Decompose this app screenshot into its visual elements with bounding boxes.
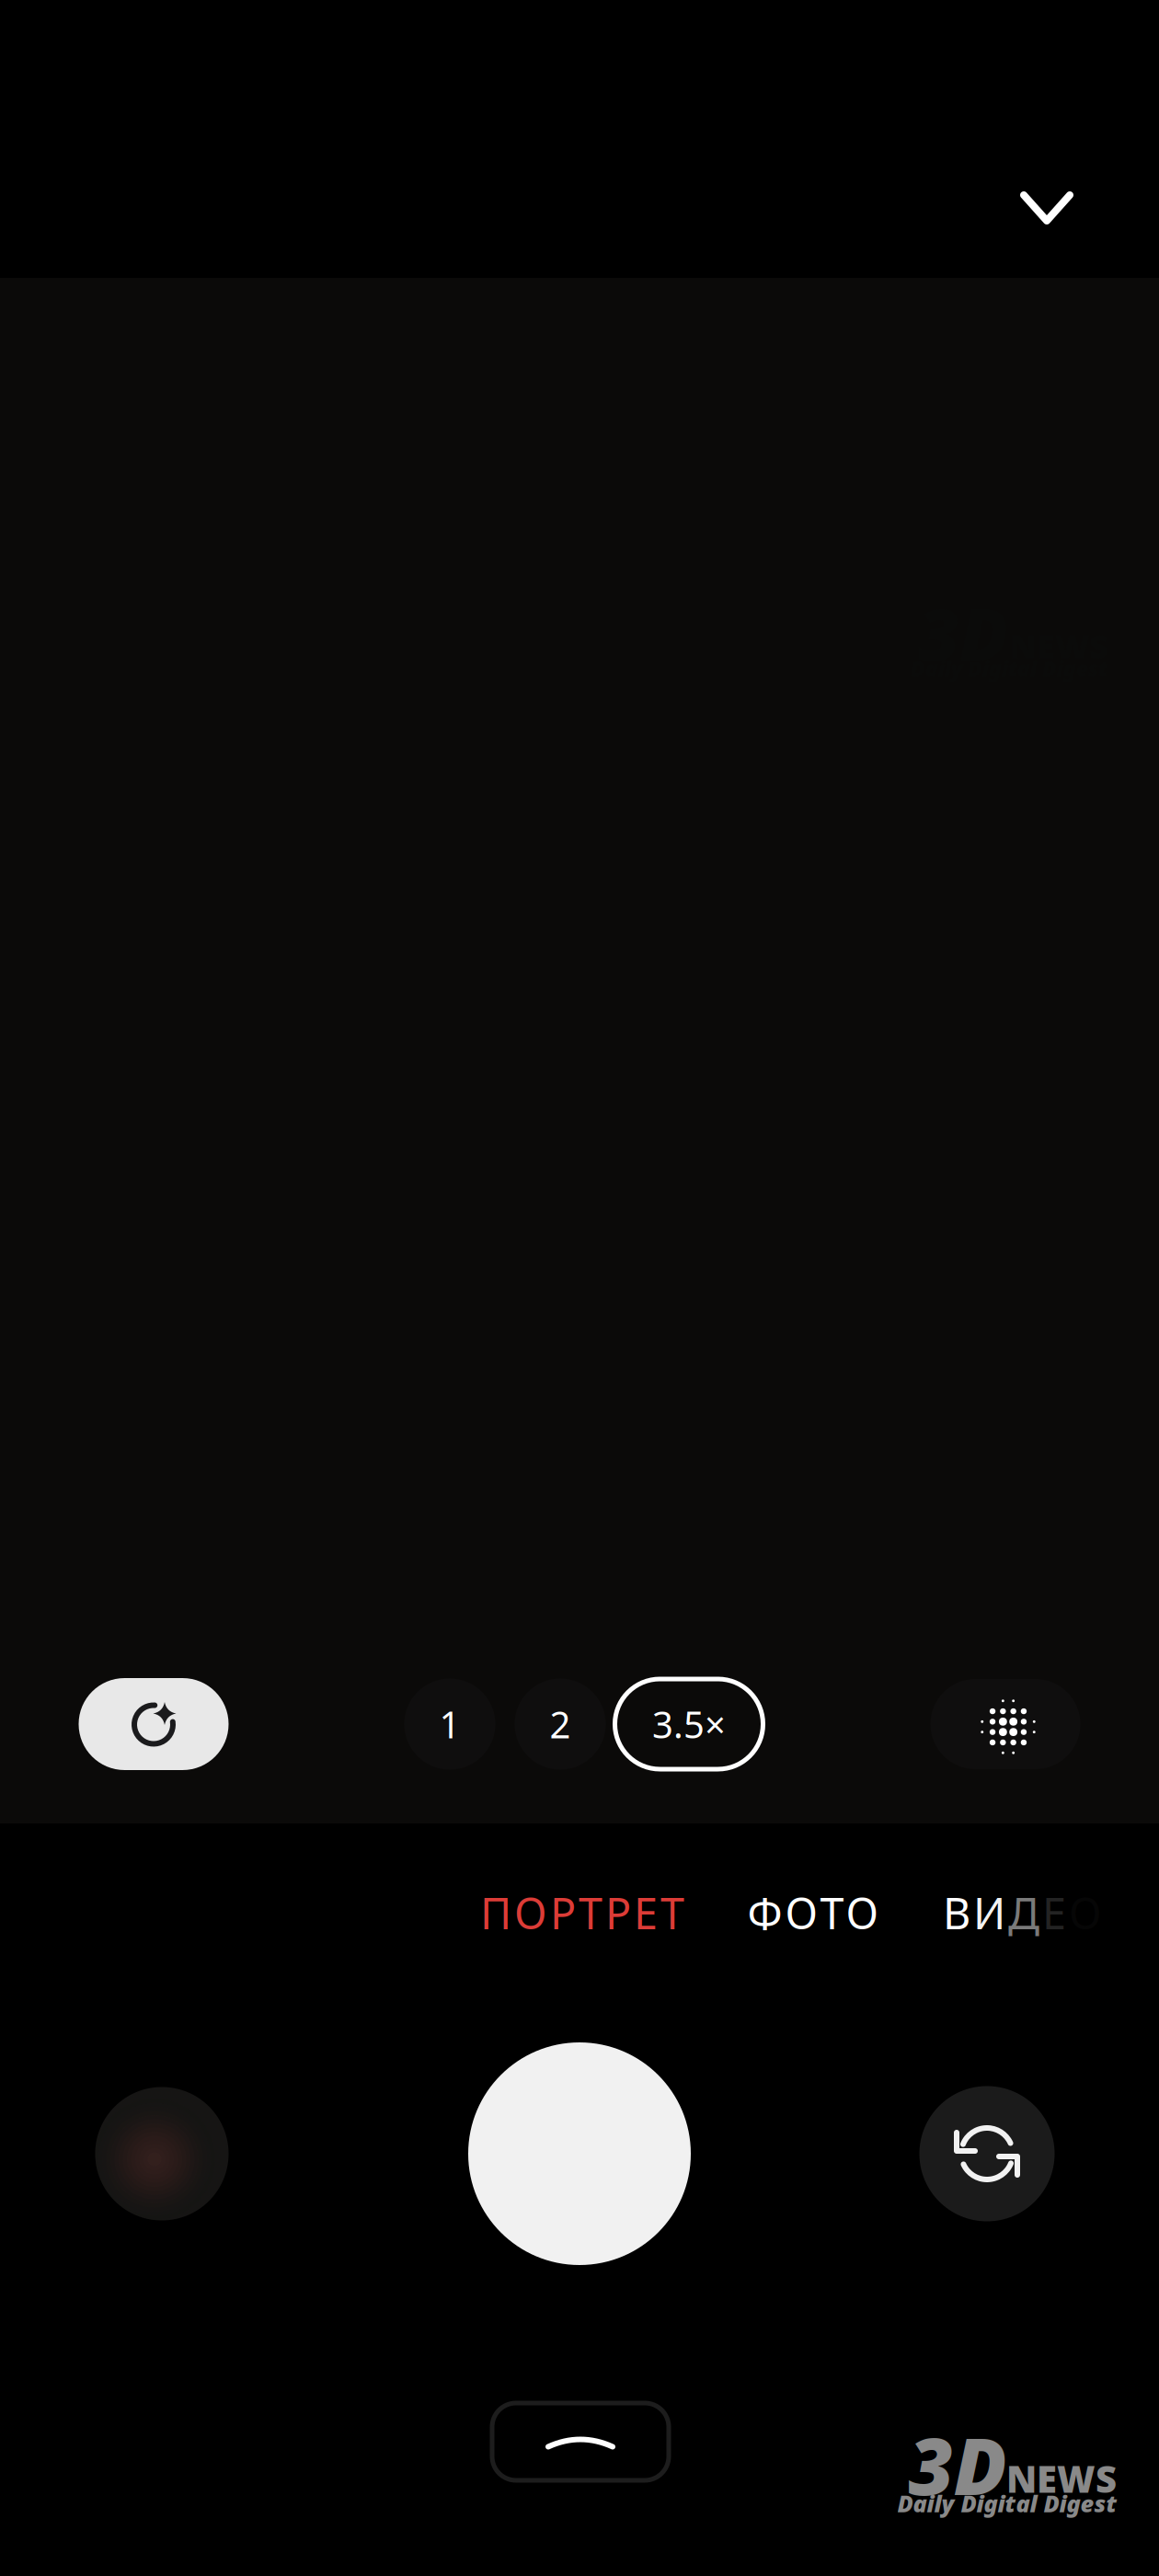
button[interactable]: Collapse viewfinder	[990, 151, 1104, 265]
staticText: 1	[439, 1700, 460, 1748]
button[interactable]: Switch camera	[919, 2086, 1055, 2221]
button[interactable]: Auto enhance	[79, 1678, 229, 1770]
staticText: Д	[1008, 1884, 1039, 1941]
staticText: ФОТО	[747, 1884, 879, 1941]
button[interactable]: 3.5×	[615, 1679, 763, 1769]
button[interactable]: ФОТО	[734, 1869, 892, 1957]
button[interactable]: Take photo	[468, 2042, 691, 2265]
staticText: Daily Digital Digest	[897, 2488, 1117, 2519]
staticText: В	[943, 1884, 970, 1941]
button[interactable]: Show more controls	[492, 2403, 669, 2480]
button[interactable]: 2	[515, 1679, 606, 1770]
button[interactable]: В	[943, 1869, 1159, 1957]
staticText: 2	[550, 1700, 571, 1748]
staticText: 3D	[908, 2413, 1007, 2517]
staticText: NEWS	[1006, 2454, 1117, 2503]
staticText: Е	[1042, 1884, 1066, 1941]
button[interactable]: Filters	[930, 1679, 1080, 1769]
staticText: 3.5×	[652, 1700, 726, 1748]
staticText: И	[973, 1884, 1005, 1941]
staticText: ПОРТРЕТ	[480, 1884, 684, 1941]
button[interactable]: ПОРТРЕТ	[467, 1869, 697, 1957]
button[interactable]: Photo gallery	[95, 2087, 229, 2220]
button[interactable]: 1	[404, 1679, 495, 1770]
